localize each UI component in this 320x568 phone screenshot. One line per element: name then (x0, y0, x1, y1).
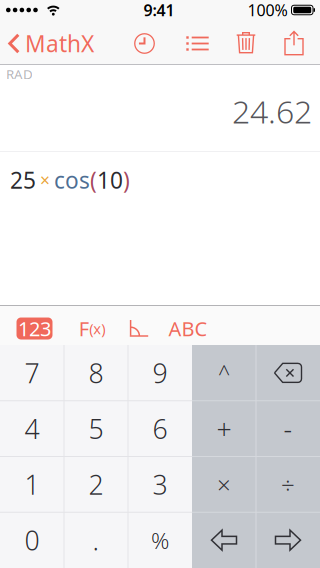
button[interactable]: 6 (128, 401, 191, 456)
staticText: ( (90, 165, 97, 195)
staticText: 25 (10, 165, 36, 195)
staticText: 6 (152, 411, 167, 446)
button[interactable]: . (64, 513, 127, 567)
button[interactable]: 8 (64, 346, 127, 400)
button[interactable]: Angle keyboard (117, 315, 161, 341)
button[interactable]: % (128, 513, 191, 567)
button[interactable]: 3 (128, 457, 191, 512)
staticText: (x) (89, 319, 105, 338)
staticText: % (151, 525, 169, 555)
button[interactable]: Expression list (180, 26, 214, 60)
staticText: ) (123, 165, 130, 195)
button[interactable]: 7 (0, 346, 63, 400)
staticText: × (40, 168, 50, 191)
staticText: + (216, 411, 231, 446)
button[interactable]: 4 (0, 401, 63, 456)
staticText: . (92, 522, 99, 558)
staticText: 1 (24, 467, 39, 502)
staticText: 2 (88, 467, 103, 502)
staticText: 3 (152, 467, 167, 502)
staticText: cos (54, 165, 90, 195)
button[interactable]: Back (8, 28, 94, 58)
staticText: 0 (24, 522, 39, 558)
button[interactable]: Letter keyboard (163, 315, 213, 341)
staticText: 8 (88, 355, 103, 391)
button[interactable]: Number keyboard (16, 315, 52, 341)
button[interactable]: Delete (256, 346, 319, 400)
staticText: 9:41 (143, 0, 174, 21)
button[interactable]: Move cursor right (256, 513, 319, 567)
staticText: ^ (218, 359, 230, 387)
button[interactable]: 1 (0, 457, 63, 512)
button[interactable]: + (192, 401, 255, 456)
button[interactable]: Function keyboard (67, 315, 117, 341)
staticText: ABC (168, 315, 207, 342)
button[interactable]: × (192, 457, 255, 512)
button[interactable]: Move cursor left (192, 513, 255, 567)
button[interactable]: ^ (192, 346, 255, 400)
button[interactable]: 5 (64, 401, 127, 456)
button[interactable]: Share (278, 26, 310, 60)
staticText: 4 (24, 411, 39, 446)
button[interactable]: ÷ (256, 457, 319, 512)
staticText: ÷ (281, 468, 295, 500)
staticText: 24.62 (232, 90, 312, 132)
staticText: × (217, 468, 231, 500)
staticText: - (283, 411, 292, 446)
button[interactable]: Delete (229, 26, 263, 60)
staticText: 123 (18, 315, 51, 342)
staticText: 7 (24, 355, 39, 391)
button[interactable]: 9 (128, 346, 191, 400)
staticText: MathX (25, 28, 94, 58)
staticText: F (79, 315, 89, 342)
button[interactable]: 0 (0, 513, 63, 567)
button[interactable]: 2 (64, 457, 127, 512)
staticText: 10 (97, 165, 123, 195)
staticText: 9 (152, 355, 167, 391)
button[interactable]: - (256, 401, 319, 456)
button[interactable]: History (127, 26, 161, 60)
staticText: RAD (6, 65, 33, 83)
staticText: 100% (247, 0, 287, 21)
staticText: 5 (88, 411, 103, 446)
